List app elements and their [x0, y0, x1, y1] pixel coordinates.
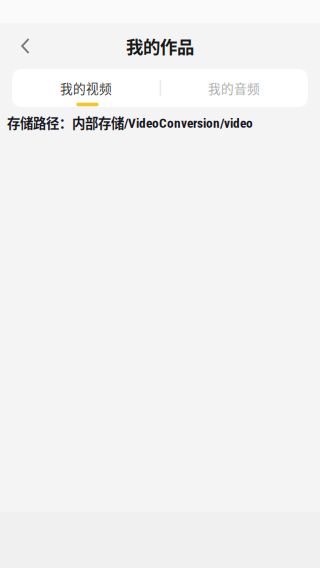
staticText: 我的音频 — [208, 79, 260, 97]
button[interactable]: 我的视频 — [12, 69, 160, 107]
staticText: 我的视频 — [60, 79, 112, 97]
button[interactable]: Back — [0, 24, 47, 68]
staticText: 存储路径：内部存储/VideoConversion/video — [7, 113, 253, 132]
staticText: 我的作品 — [126, 33, 194, 59]
button[interactable]: 我的音频 — [160, 69, 308, 107]
